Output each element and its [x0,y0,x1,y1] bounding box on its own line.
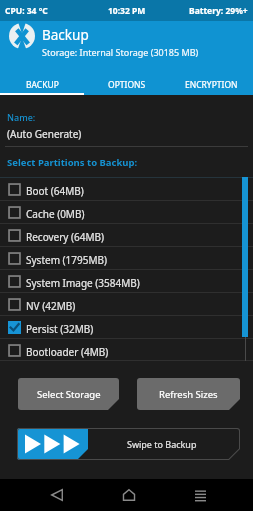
button[interactable]: Back [41,479,73,511]
staticText: Boot (64MB) [26,184,84,198]
staticText: Persist (32MB) [26,322,94,336]
staticText: CPU: 34 °C [5,5,48,17]
staticText: Name: [7,111,36,123]
staticText: Recovery (64MB) [26,230,105,244]
button[interactable]: Swipe to Backup [17,428,240,460]
button[interactable]: System Image (3584MB) [0,270,253,293]
staticText: 10:32 PM [108,5,146,17]
staticText: Swipe to Backup [127,438,197,450]
staticText: Bootloader (4MB) [26,345,109,359]
button[interactable]: Bootloader (4MB) [0,339,253,361]
button[interactable]: Recent apps [184,479,216,511]
button[interactable]: Boot (64MB) [0,178,253,201]
staticText: Refresh Sizes [159,388,218,401]
staticText: Storage: Internal Storage (30185 MB) [42,46,199,58]
button[interactable]: Cache (0MB) [0,201,253,224]
staticText: BACKUP [26,79,59,91]
button[interactable]: NV (42MB) [0,293,253,316]
staticText: (Auto Generate) [7,127,82,141]
staticText: System Image (3584MB) [26,276,140,290]
button[interactable]: System (1795MB) [0,247,253,270]
staticText: ENCRYPTION [185,79,238,91]
button[interactable]: Select Storage [18,378,119,410]
button[interactable]: ENCRYPTION [169,73,253,93]
button[interactable]: Recovery (64MB) [0,224,253,247]
button[interactable]: Persist (32MB) [0,316,253,339]
staticText: NV (42MB) [26,299,76,313]
staticText: Battery: 29%+ [189,5,248,17]
staticText: Backup [42,26,89,44]
staticText: System (1795MB) [26,253,108,267]
staticText: OPTIONS [108,79,146,91]
button[interactable]: Refresh Sizes [137,378,240,410]
staticText: Select Partitions to Backup: [7,156,138,169]
staticText: Cache (0MB) [26,207,85,221]
staticText: Select Storage [37,388,101,401]
button[interactable]: OPTIONS [85,73,169,93]
button[interactable]: BACKUP [0,73,85,93]
button[interactable]: Home [113,479,145,511]
